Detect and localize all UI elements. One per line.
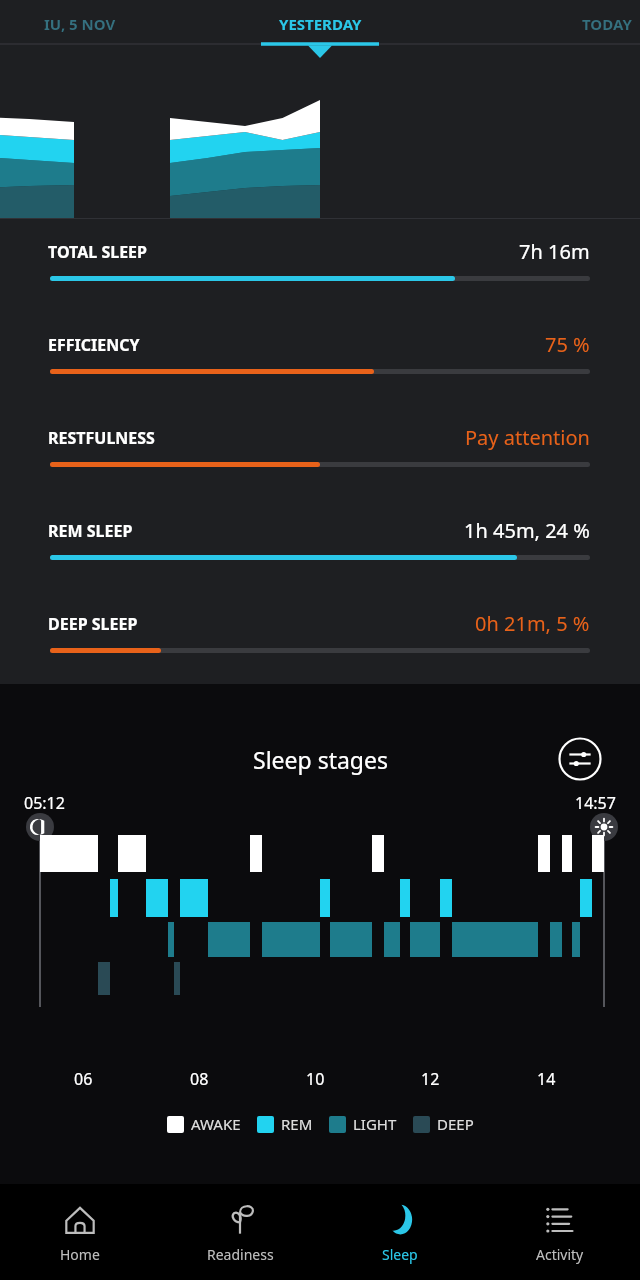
staticText: Home — [60, 1245, 100, 1264]
button[interactable]: Sleep stage settings — [558, 737, 602, 781]
button[interactable]: TOTAL SLEEP — [0, 219, 640, 281]
staticText: 12 — [421, 1068, 440, 1090]
staticText: 06 — [74, 1068, 93, 1090]
staticText: IU, 5 NOV — [44, 14, 116, 34]
staticText: 10 — [306, 1068, 325, 1090]
staticText: 7h 16m — [519, 238, 590, 265]
staticText: 75 % — [545, 331, 590, 358]
button[interactable]: YESTERDAY — [220, 0, 420, 48]
staticText: RESTFULNESS — [48, 427, 155, 449]
staticText: 08 — [190, 1068, 209, 1090]
staticText: Sleep stages — [253, 744, 388, 775]
button[interactable]: RESTFULNESS — [0, 374, 640, 467]
button[interactable]: LIGHT — [329, 1114, 397, 1134]
button[interactable]: Sleep — [320, 1184, 480, 1280]
staticText: TODAY — [582, 14, 632, 34]
button[interactable]: REM — [257, 1114, 313, 1134]
button[interactable]: DEEP SLEEP — [0, 560, 640, 653]
staticText: TOTAL SLEEP — [48, 241, 147, 263]
staticText: DEEP SLEEP — [48, 613, 138, 635]
button[interactable]: EFFICIENCY — [0, 281, 640, 374]
staticText: Readiness — [207, 1245, 274, 1264]
staticText: Activity — [536, 1245, 584, 1264]
staticText: 14 — [537, 1068, 556, 1090]
button[interactable]: Home — [0, 1184, 160, 1280]
staticText: 0h 21m, 5 % — [475, 610, 590, 637]
staticText: 1h 45m, 24 % — [464, 517, 590, 544]
staticText: DEEP — [437, 1114, 474, 1134]
button[interactable]: Readiness — [160, 1184, 320, 1280]
staticText: Sleep — [382, 1245, 418, 1264]
staticText: 14:57 — [575, 792, 616, 814]
button[interactable]: Activity — [480, 1184, 640, 1280]
button[interactable]: TODAY — [490, 0, 640, 48]
staticText: REM — [281, 1114, 313, 1134]
button[interactable]: IU, 5 NOV — [0, 0, 160, 48]
staticText: YESTERDAY — [279, 14, 362, 34]
button[interactable]: DEEP — [413, 1114, 474, 1134]
staticText: Pay attention — [465, 424, 590, 451]
button[interactable]: REM SLEEP — [0, 467, 640, 560]
staticText: AWAKE — [191, 1114, 241, 1134]
staticText: REM SLEEP — [48, 520, 133, 542]
staticText: LIGHT — [353, 1114, 397, 1134]
staticText: 05:12 — [24, 792, 65, 814]
button[interactable]: AWAKE — [167, 1114, 241, 1134]
staticText: EFFICIENCY — [48, 334, 140, 356]
